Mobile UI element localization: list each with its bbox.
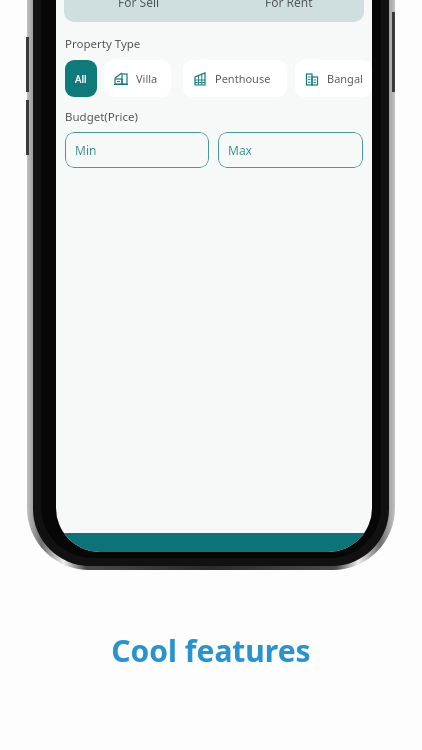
staticText: Property Type	[65, 36, 141, 52]
staticText: For Sell	[118, 0, 160, 10]
other: Villa	[113, 71, 129, 87]
button[interactable]: All	[65, 60, 97, 97]
staticText: Min	[75, 142, 97, 158]
button[interactable]: Bangalow	[295, 60, 372, 97]
staticText: Villa	[136, 71, 158, 86]
other: Penthouse	[192, 71, 208, 87]
staticText: For Rent	[265, 0, 313, 10]
button[interactable]: Max	[218, 132, 363, 168]
button[interactable]: For Rent	[214, 0, 364, 22]
staticText: Budget(Price)	[65, 109, 138, 125]
button[interactable]: Penthouse	[183, 60, 287, 97]
staticText: Max	[228, 142, 252, 158]
staticText: Cool features	[111, 630, 311, 671]
staticText: All	[75, 72, 87, 86]
button[interactable]: Villa	[104, 60, 171, 97]
other: Bangalow	[304, 71, 320, 87]
staticText: Penthouse	[215, 71, 271, 86]
staticText: Bangal	[327, 71, 363, 86]
button[interactable]: For Sell	[64, 0, 214, 22]
button[interactable]: Min	[65, 132, 209, 168]
